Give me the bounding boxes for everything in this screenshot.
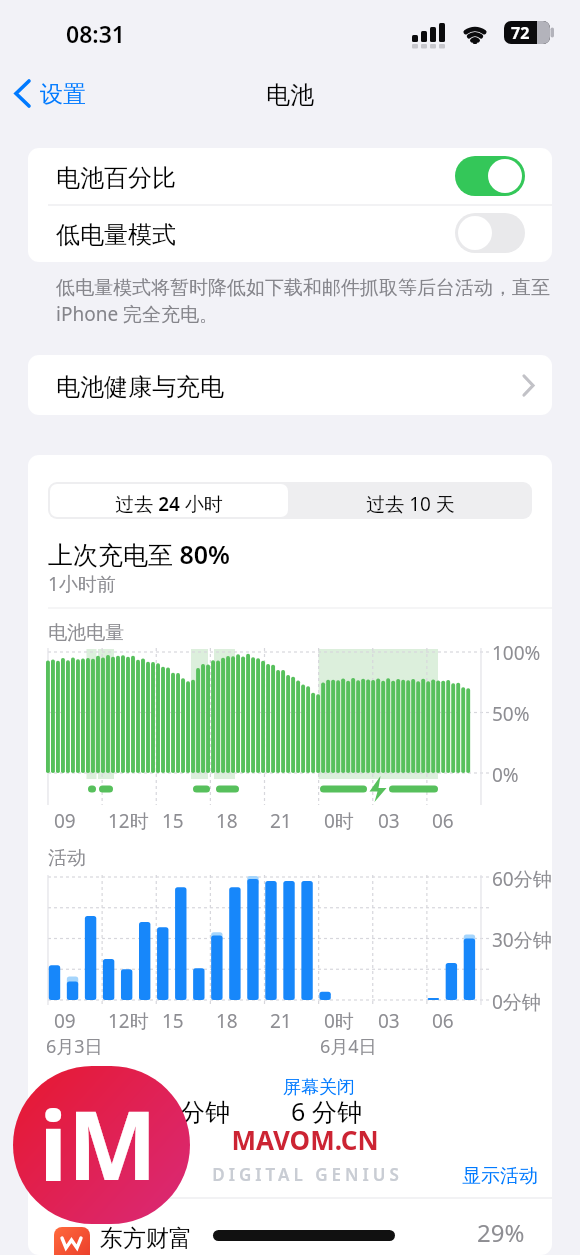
staticText: 12时 bbox=[108, 808, 149, 834]
staticText: 18 bbox=[216, 1008, 238, 1034]
staticText: 72 bbox=[511, 22, 530, 44]
staticText: 30分钟 bbox=[492, 927, 552, 953]
staticText: 电池 bbox=[266, 80, 314, 110]
staticText: 电池健康与充电 bbox=[56, 372, 224, 402]
staticText: 03 bbox=[378, 808, 400, 834]
staticText: 0时 bbox=[324, 808, 354, 834]
staticText: 东方财富 bbox=[100, 1224, 192, 1253]
staticText: 电池电量 bbox=[48, 621, 124, 645]
button[interactable] bbox=[28, 355, 552, 415]
button[interactable]: 显示活动 bbox=[450, 1158, 550, 1194]
staticText: 08:31 bbox=[66, 18, 125, 49]
staticText: 过去 10 天 bbox=[366, 491, 455, 517]
staticText: 屏幕关闭 bbox=[283, 1076, 355, 1099]
staticText: 活动 bbox=[48, 846, 86, 870]
staticText: 09 bbox=[54, 808, 76, 834]
staticText: 6月4日 bbox=[320, 1034, 377, 1059]
staticText: 29% bbox=[477, 1216, 525, 1249]
staticText: iPhone 完全充电。 bbox=[56, 301, 219, 327]
button[interactable] bbox=[290, 484, 530, 517]
staticText: 0时 bbox=[324, 1008, 354, 1034]
button[interactable] bbox=[50, 484, 288, 517]
button[interactable] bbox=[28, 148, 552, 205]
staticText: 15 bbox=[162, 808, 184, 834]
staticText: 低电量模式将暂时降低如下载和邮件抓取等后台活动，直至 bbox=[56, 276, 550, 300]
staticText: 过去 24 小时 bbox=[115, 491, 223, 517]
staticText: 21 bbox=[270, 808, 292, 834]
staticText: 3小时41分钟 bbox=[87, 1094, 230, 1128]
staticText: 06 bbox=[432, 1008, 454, 1034]
staticText: 0% bbox=[492, 762, 519, 788]
staticText: 15 bbox=[162, 1008, 184, 1034]
staticText: 电池百分比 bbox=[56, 163, 176, 193]
staticText: 03 bbox=[378, 1008, 400, 1034]
staticText: 100% bbox=[492, 640, 541, 666]
button[interactable] bbox=[28, 205, 552, 262]
staticText: 6 分钟 bbox=[291, 1094, 362, 1128]
staticText: DIGITAL GENIUS bbox=[212, 1163, 403, 1186]
button[interactable] bbox=[455, 156, 525, 196]
staticText: iM bbox=[39, 1078, 157, 1207]
staticText: 18 bbox=[216, 808, 238, 834]
staticText: 1小时前 bbox=[48, 571, 116, 597]
button[interactable] bbox=[28, 1198, 552, 1255]
staticText: 上次充电至 80% bbox=[48, 537, 230, 571]
staticText: 显示活动 bbox=[462, 1164, 538, 1188]
staticText: 低电量模式 bbox=[56, 220, 176, 250]
staticText: 21 bbox=[270, 1008, 292, 1034]
staticText: 6月3日 bbox=[46, 1034, 103, 1059]
staticText: 06 bbox=[432, 808, 454, 834]
button[interactable] bbox=[10, 74, 110, 114]
staticText: MAVOM.CN bbox=[231, 1122, 379, 1157]
button[interactable] bbox=[455, 213, 525, 253]
staticText: 12时 bbox=[108, 1008, 149, 1034]
staticText: 60分钟 bbox=[492, 866, 552, 892]
staticText: 设置 bbox=[40, 80, 86, 109]
staticText: 09 bbox=[54, 1008, 76, 1034]
staticText: 0分钟 bbox=[492, 989, 541, 1015]
staticText: 50% bbox=[492, 701, 530, 727]
